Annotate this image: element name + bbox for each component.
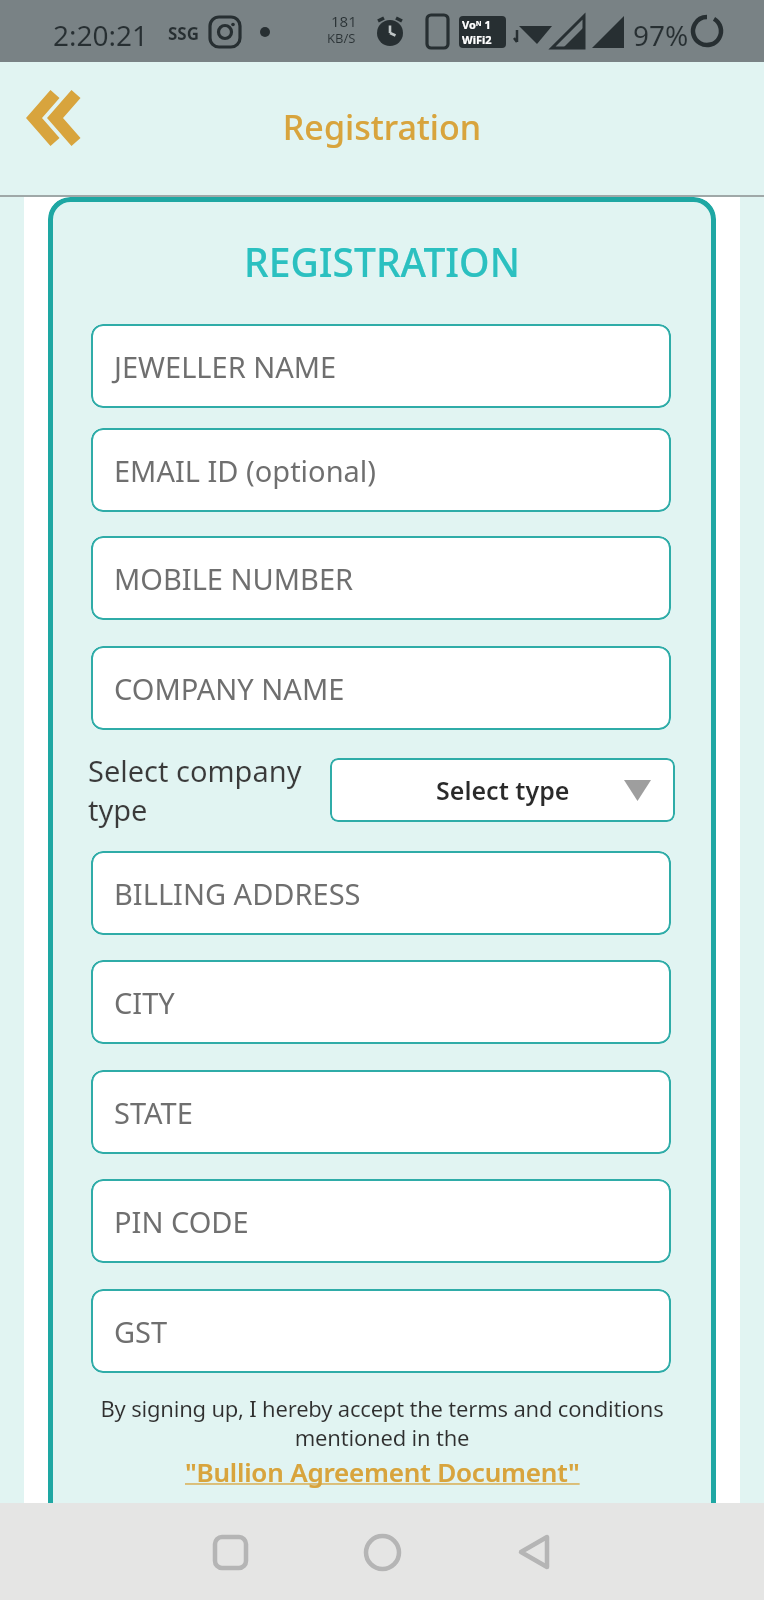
button[interactable]: CITY [91,960,671,1044]
staticText: 97% [633,16,689,54]
staticText: "Bullion Agreement Document" [185,1454,580,1489]
button[interactable]: BILLING ADDRESS [91,851,671,935]
staticText: PIN CODE [114,1202,249,1241]
staticText: SSG [168,22,200,45]
button[interactable] [494,1512,574,1592]
staticText: Registration [0,104,764,150]
button[interactable]: STATE [91,1070,671,1154]
button[interactable]: COMPANY NAME [91,646,671,730]
button[interactable]: MOBILE NUMBER [91,536,671,620]
staticText: 181 [331,11,357,31]
staticText: Voᴺ 1 [462,17,491,32]
staticText: MOBILE NUMBER [114,559,354,598]
button[interactable] [24,92,86,148]
button[interactable]: Select type [330,758,675,822]
staticText: 2:20:21 [53,16,149,54]
staticText: STATE [114,1093,193,1132]
staticText: KB/S [327,29,356,47]
staticText: EMAIL ID (optional) [114,451,377,490]
button[interactable] [342,1512,422,1592]
staticText: Select type [436,773,570,807]
button[interactable]: EMAIL ID (optional) [91,428,671,512]
staticText: GST [114,1312,168,1351]
staticText: By signing up, I hereby accept the terms… [0,1393,764,1452]
button[interactable]: JEWELLER NAME [91,324,671,408]
button[interactable]: "Bullion Agreement Document" [185,1454,580,1489]
staticText: COMPANY NAME [114,669,345,708]
staticText: WiFi2 [462,32,492,47]
button[interactable]: GST [91,1289,671,1373]
button[interactable] [190,1512,270,1592]
staticText: BILLING ADDRESS [114,874,361,913]
staticText: Select company type [88,751,302,829]
staticText: JEWELLER NAME [114,347,337,386]
staticText: CITY [114,983,175,1022]
staticText: REGISTRATION [0,235,764,288]
button[interactable]: PIN CODE [91,1179,671,1263]
